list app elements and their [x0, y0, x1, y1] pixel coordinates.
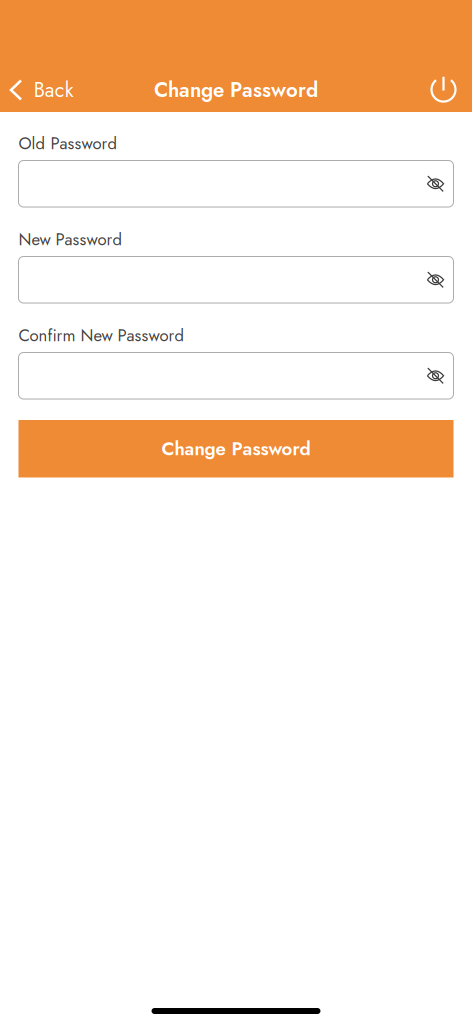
- staticText: Old Password: [18, 131, 117, 156]
- staticText: Change Password: [161, 435, 310, 462]
- button[interactable]: Show Old Password: [417, 161, 453, 207]
- button[interactable]: Log out: [415, 68, 472, 112]
- button[interactable]: New Password: [18, 256, 453, 303]
- staticText: Back: [34, 75, 74, 104]
- button[interactable]: Old Password: [18, 160, 453, 207]
- staticText: Confirm New Password: [18, 323, 184, 348]
- button[interactable]: Back: [0, 68, 86, 112]
- staticText: Change Password: [154, 75, 318, 105]
- button[interactable]: Change Password: [18, 420, 453, 477]
- staticText: New Password: [18, 227, 122, 252]
- button[interactable]: Confirm New Password: [18, 352, 453, 399]
- button[interactable]: Show Confirm New Password: [417, 353, 453, 399]
- button[interactable]: Show New Password: [417, 257, 453, 303]
